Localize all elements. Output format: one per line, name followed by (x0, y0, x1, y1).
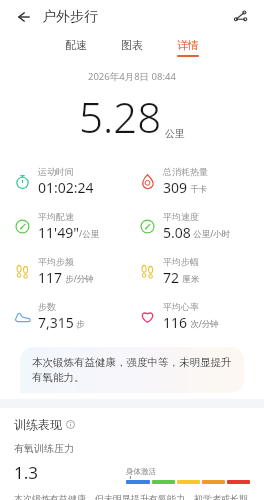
staticText: 步数 (38, 301, 56, 312)
staticText: 01:02:24 (38, 178, 94, 197)
staticText: 公里/小时 (191, 228, 231, 240)
button[interactable]: 平均配速 (0, 204, 132, 249)
button[interactable]: 步数 (0, 294, 132, 339)
staticText: 5.28 (79, 88, 162, 145)
staticText: 总消耗热量 (163, 166, 208, 177)
button[interactable]: 总消耗热量 (132, 159, 264, 204)
staticText: 配速 (65, 38, 87, 52)
staticText: 117 (38, 268, 63, 287)
staticText: /公里 (79, 228, 100, 240)
button[interactable]: 详情 (173, 38, 203, 57)
button[interactable]: Back (12, 6, 34, 28)
staticText: 11'49" (38, 223, 79, 242)
staticText: 7,315 (38, 313, 74, 332)
staticText: 图表 (121, 38, 143, 52)
staticText: 本次锻炼有益健康，但未明显提升有氧能力。初学者或长期中断重新锻炼者，可以从此强度… (14, 493, 250, 500)
staticText: 5.08 (163, 223, 191, 242)
staticText: 步/分钟 (63, 273, 94, 285)
button[interactable]: 配速 (61, 38, 91, 57)
button[interactable]: 平均步幅 (132, 249, 264, 294)
staticText: 116 (163, 313, 188, 332)
button[interactable]: Share (230, 6, 252, 28)
staticText: 平均速度 (163, 211, 199, 222)
staticText: 平均心率 (163, 301, 199, 312)
staticText: 公里 (165, 127, 185, 140)
staticText: 厘米 (180, 273, 200, 285)
other: Info (66, 420, 75, 429)
staticText: 步 (74, 318, 85, 330)
staticText: 72 (163, 268, 180, 287)
staticText: 有氧训练压力 (14, 442, 74, 455)
button[interactable]: 平均心率 (132, 294, 264, 339)
staticText: 次/分钟 (188, 318, 219, 330)
button[interactable]: 图表 (117, 38, 147, 57)
staticText: 详情 (177, 38, 199, 52)
staticText: 户外步行 (42, 8, 98, 26)
staticText: 平均步频 (38, 256, 74, 267)
staticText: 平均配速 (38, 211, 74, 222)
staticText: 2026年4月8日 08:44 (88, 70, 176, 83)
staticText: 千卡 (188, 183, 208, 195)
staticText: 身体激活 (126, 467, 156, 476)
staticText: 平均步幅 (163, 256, 199, 267)
staticText: 运动时间 (38, 166, 74, 177)
button[interactable]: 训练表现 (14, 417, 75, 432)
button[interactable]: 平均步频 (0, 249, 132, 294)
staticText: 309 (163, 178, 188, 197)
staticText: 1.3 (14, 461, 39, 484)
staticText: 本次锻炼有益健康，强度中等，未明显提升有氧能力。 (32, 356, 232, 384)
button[interactable]: 本次锻炼有益健康，强度中等，未明显提升有氧能力。 (20, 347, 244, 393)
button[interactable]: 运动时间 (0, 159, 132, 204)
button[interactable]: 平均速度 (132, 204, 264, 249)
staticText: 训练表现 (14, 417, 62, 432)
